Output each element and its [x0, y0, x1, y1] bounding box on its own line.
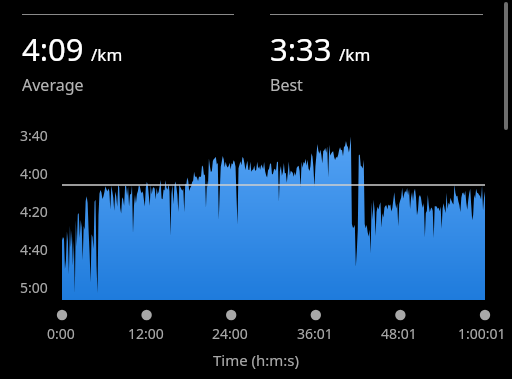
staticText: 24:00 [212, 324, 248, 343]
staticText: /km [339, 43, 371, 66]
staticText: 1:00:01 [458, 324, 506, 343]
button[interactable]: 4:09 [22, 14, 248, 96]
staticText: 3:40 [20, 126, 48, 145]
staticText: Time (h:m:s) [0, 350, 512, 370]
staticText: 4:40 [20, 240, 48, 259]
staticText: 3:33 [270, 28, 332, 70]
staticText: /km [91, 43, 123, 66]
staticText: 12:00 [128, 324, 164, 343]
staticText: Average [22, 74, 84, 96]
staticText: 4:20 [20, 202, 48, 221]
staticText: 5:00 [20, 278, 48, 297]
button[interactable]: Pace chart [0, 0, 512, 379]
staticText: 48:01 [381, 324, 417, 343]
staticText: 0:00 [47, 324, 75, 343]
button[interactable]: 3:33 [270, 14, 497, 96]
staticText: 4:09 [22, 28, 84, 70]
staticText: 4:00 [20, 164, 48, 183]
staticText: 36:01 [297, 324, 333, 343]
staticText: Best [270, 74, 303, 96]
